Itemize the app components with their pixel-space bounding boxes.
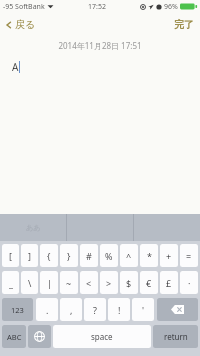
button[interactable]: = [180,244,198,267]
staticText: . [46,304,49,316]
staticText: ~ [66,277,72,289]
button[interactable]: . [36,298,58,321]
button[interactable]: , [60,298,82,321]
staticText: \ [28,277,32,289]
other: Back [5,21,13,29]
button[interactable]: + [160,244,178,267]
staticText: A [12,60,19,74]
staticText: space [91,331,113,342]
button[interactable]: > [100,271,118,294]
button[interactable]: space [53,325,151,348]
staticText: 123 [11,305,24,315]
staticText: -95 SoftBank [3,2,45,12]
button[interactable]: | [40,271,58,294]
staticText: { [47,250,51,262]
button[interactable]: ! [108,298,130,321]
staticText: 2014年11月28日 17:51 [0,40,200,51]
staticText: 完了 [174,18,194,31]
staticText: £ [166,277,172,289]
button[interactable]: ] [21,244,38,267]
button[interactable]: ' [132,298,154,321]
staticText: > [106,277,112,289]
staticText: 戻る [15,18,36,31]
button[interactable]: _ [2,271,19,294]
staticText: # [86,250,92,262]
button[interactable]: < [80,271,98,294]
button[interactable]: return [153,325,198,348]
staticText: = [186,250,192,262]
button[interactable]: ^ [120,244,138,267]
staticText: | [47,277,52,289]
button[interactable]: Switch keyboard language [28,325,51,348]
staticText: , [70,304,73,316]
staticText: % [105,250,113,262]
button[interactable]: % [100,244,118,267]
button[interactable]: [ [2,244,19,267]
button[interactable]: € [140,271,158,294]
staticText: _ [9,277,13,289]
staticText: · [188,277,191,289]
staticText: $ [126,277,132,289]
staticText: 17:52 [88,2,106,12]
staticText: ! [118,304,121,316]
staticText: ああ [26,223,41,232]
button[interactable]: * [140,244,158,267]
button[interactable]: 123 [2,298,33,321]
staticText: € [146,277,152,289]
button[interactable]: # [80,244,98,267]
button[interactable]: ? [84,298,106,321]
staticText: return [164,331,188,342]
staticText: < [86,277,92,289]
staticText: ' [142,304,145,316]
button[interactable]: Backspace [157,298,198,321]
staticText: * [147,250,152,262]
staticText: } [67,250,71,262]
button[interactable]: } [60,244,78,267]
staticText: 96% [164,2,178,12]
button[interactable]: { [40,244,58,267]
staticText: + [166,250,172,262]
button[interactable]: · [180,271,198,294]
button[interactable]: ABC [2,325,26,348]
staticText: ] [28,250,31,262]
staticText: ^ [126,250,132,262]
button[interactable]: Back [0,14,44,35]
staticText: ? [93,304,97,316]
button[interactable]: £ [160,271,178,294]
button[interactable]: $ [120,271,138,294]
staticText: [ [9,250,12,262]
button[interactable]: \ [21,271,38,294]
button[interactable]: ~ [60,271,78,294]
staticText: ABC [7,332,22,342]
button[interactable]: 完了 [168,14,200,35]
